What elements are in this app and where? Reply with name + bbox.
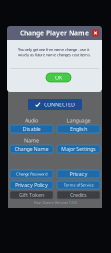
staticText: Name: [24, 137, 39, 144]
staticText: You only get one free name change - use …: [18, 47, 91, 57]
staticText: Terms of Service: [63, 182, 93, 188]
staticText: Change Password: [16, 171, 47, 177]
button[interactable]: Close: [7, 26, 14, 33]
button[interactable]: Disable: [10, 125, 53, 133]
staticText: Privacy Policy: [15, 181, 48, 189]
staticText: English: [70, 125, 87, 133]
staticText: Major Settings: [61, 145, 96, 153]
button[interactable]: English: [57, 125, 100, 133]
staticText: CONNECTED: [44, 101, 75, 108]
staticText: Change Player Name: [20, 29, 89, 37]
button[interactable]: OK: [7, 40, 32, 49]
button[interactable]: Terms of Service: [57, 181, 100, 189]
staticText: Credits: [70, 191, 87, 199]
staticText: Privacy: [69, 170, 87, 178]
staticText: Change Name: [14, 145, 48, 153]
staticText: Language: [66, 117, 90, 124]
button[interactable]: Major Settings: [57, 145, 100, 153]
staticText: OK: [55, 74, 62, 81]
button[interactable]: CONNECTED: [28, 99, 82, 110]
button[interactable]: Change Password: [10, 170, 53, 178]
button[interactable]: Credits: [57, 191, 100, 199]
button[interactable]: Privacy: [57, 170, 100, 178]
button[interactable]: Change Name: [10, 145, 53, 153]
staticText: Your Game Version 1.0.0: [33, 200, 76, 205]
button[interactable]: Gift Token: [10, 191, 53, 199]
staticText: Disable: [22, 125, 40, 133]
staticText: Audio: [25, 117, 38, 124]
staticText: Gift Token: [19, 191, 44, 199]
button[interactable]: Privacy Policy: [10, 181, 53, 189]
